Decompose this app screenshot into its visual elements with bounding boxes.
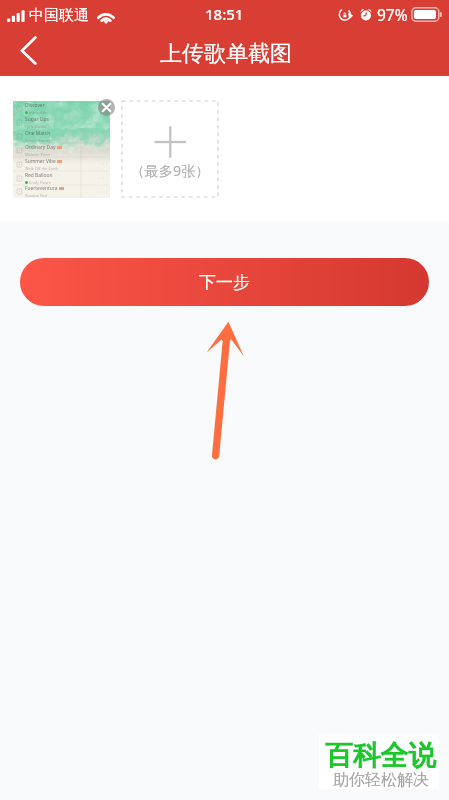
- staticText: Melanie Penn: [25, 152, 50, 157]
- staticText: Ordinary Day: [25, 144, 56, 151]
- staticText: 97%: [377, 4, 408, 25]
- staticText: 下一步: [199, 272, 250, 293]
- staticText: Discover: [25, 102, 45, 109]
- staticText: Fuerteventura: [25, 185, 58, 192]
- staticText: Simon Harriet: [25, 138, 51, 143]
- button[interactable]: Add picture: [122, 101, 218, 197]
- staticText: 中国联通: [29, 6, 89, 25]
- staticText: 助你轻松解决: [333, 770, 429, 790]
- staticText: Russian Red: [25, 193, 48, 198]
- staticText: Red Balloon: [25, 172, 53, 179]
- staticText: Sugar Lips: [25, 116, 49, 123]
- button[interactable]: 下一步: [20, 258, 429, 306]
- staticText: Emily Hearn: [29, 180, 52, 185]
- button[interactable]: Remove image: [98, 99, 115, 116]
- staticText: 18:51: [205, 4, 244, 24]
- staticText: 百科全说: [325, 738, 437, 773]
- staticText: （最多9张）: [122, 161, 218, 180]
- button[interactable]: Back: [9, 33, 45, 69]
- staticText: One Match: [25, 130, 51, 137]
- staticText: Lyric Blocks: [25, 124, 47, 129]
- staticText: Summer Vibe: [25, 158, 56, 165]
- staticText: Walk Off the Earth: [25, 166, 59, 171]
- staticText: Intrrudde: [29, 110, 47, 115]
- staticText: 上传歌单截图: [160, 40, 292, 68]
- button[interactable]: Discover: [13, 101, 110, 198]
